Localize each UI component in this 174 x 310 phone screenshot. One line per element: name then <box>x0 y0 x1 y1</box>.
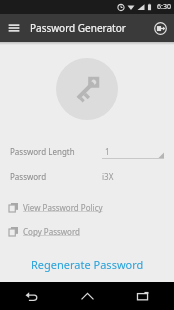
button[interactable]: Password length <box>102 144 164 159</box>
button[interactable]: Regenerate Password <box>0 253 174 275</box>
staticText: i3X <box>102 171 114 182</box>
button[interactable]: Logout <box>146 14 174 42</box>
staticText: 6:30 <box>157 2 171 12</box>
button[interactable]: Copy Password <box>0 223 174 239</box>
staticText: Password Length <box>10 146 75 157</box>
button[interactable]: Recents <box>126 282 160 310</box>
button[interactable]: Back <box>14 282 48 310</box>
button[interactable]: View Password Policy <box>0 199 174 215</box>
staticText: Copy Password <box>23 226 80 237</box>
staticText: 1 <box>105 146 110 157</box>
staticText: Password Generator <box>30 21 126 35</box>
button[interactable]: Home <box>70 282 104 310</box>
button[interactable]: Menu <box>0 14 28 42</box>
staticText: View Password Policy <box>23 202 103 213</box>
staticText: Regenerate Password <box>31 257 144 272</box>
staticText: Password <box>10 171 47 182</box>
